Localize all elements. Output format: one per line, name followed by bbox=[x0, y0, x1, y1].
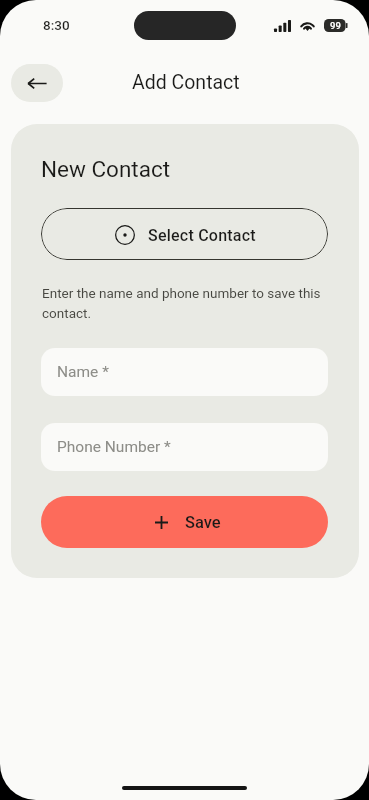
button[interactable]: Back bbox=[11, 64, 63, 102]
staticText: Enter the name and phone number to save … bbox=[42, 285, 334, 322]
staticText: New Contact bbox=[41, 156, 171, 182]
staticText: 8:30 bbox=[43, 17, 70, 33]
button[interactable]: Phone Number * bbox=[41, 423, 328, 471]
button[interactable]: Select Contact bbox=[41, 208, 328, 260]
staticText: Save bbox=[185, 513, 221, 532]
staticText: Add Contact bbox=[132, 71, 240, 94]
staticText: Phone Number * bbox=[57, 438, 171, 456]
button[interactable]: Save bbox=[41, 496, 328, 548]
staticText: 99 bbox=[330, 20, 341, 31]
button[interactable]: Name * bbox=[41, 348, 328, 396]
staticText: Select Contact bbox=[148, 226, 256, 245]
staticText: Name * bbox=[57, 363, 109, 381]
